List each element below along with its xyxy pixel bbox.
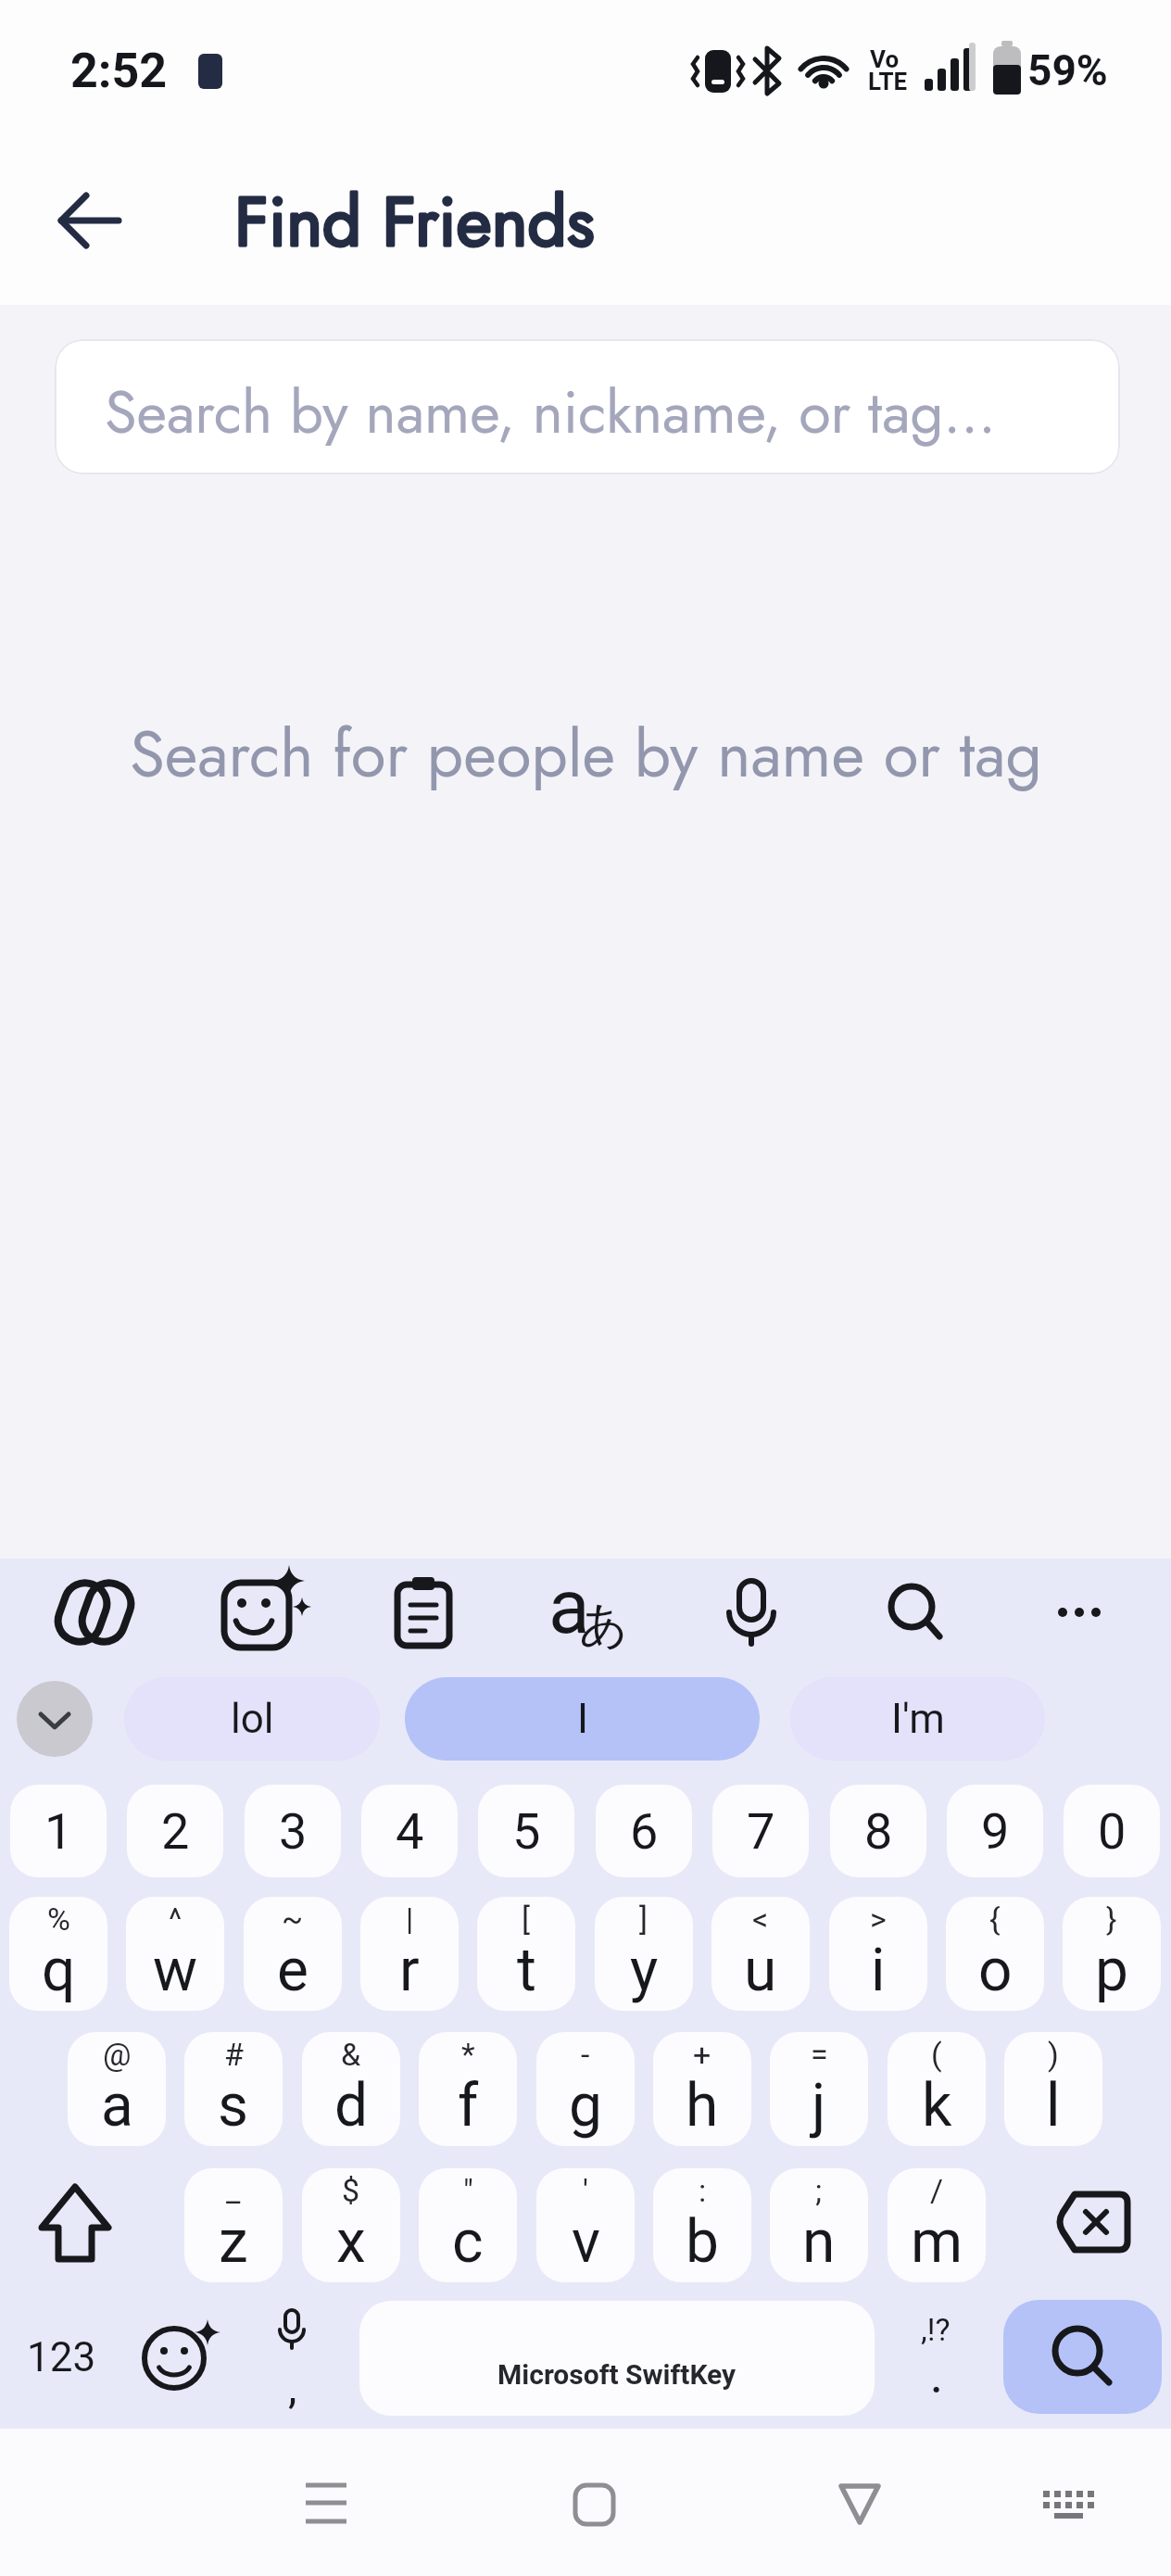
button[interactable] — [1039, 2168, 1152, 2279]
button[interactable]: # — [184, 2032, 283, 2146]
button[interactable]: * — [419, 2032, 517, 2146]
staticText: Search by name, nickname, or tag… — [105, 371, 997, 455]
button[interactable]: $ — [302, 2168, 400, 2282]
button[interactable] — [9, 2301, 113, 2416]
button[interactable]: ) — [1004, 2032, 1102, 2146]
button[interactable] — [1028, 1561, 1130, 1663]
button[interactable]: + — [653, 2032, 751, 2146]
staticText: = — [811, 2036, 828, 2073]
button[interactable]: lol — [124, 1677, 380, 1761]
button[interactable]: ~ — [244, 1897, 342, 2011]
staticText: | — [406, 1900, 414, 1938]
button[interactable]: 2 — [127, 1785, 223, 1877]
staticText: 9 — [981, 1802, 1010, 1861]
button[interactable] — [864, 1561, 966, 1663]
staticText: h — [686, 2071, 719, 2140]
button[interactable] — [546, 2453, 644, 2551]
button[interactable]: { — [946, 1897, 1044, 2011]
button[interactable]: : — [653, 2168, 751, 2282]
staticText: 1 — [44, 1802, 73, 1861]
button[interactable]: & — [302, 2032, 400, 2146]
button[interactable]: 4 — [361, 1785, 458, 1877]
staticText: あ — [579, 1595, 629, 1656]
staticText: t — [517, 1936, 536, 2005]
button[interactable]: _ — [184, 2168, 283, 2282]
button[interactable]: < — [711, 1897, 810, 2011]
button[interactable]: - — [536, 2032, 635, 2146]
button[interactable]: ; — [770, 2168, 868, 2282]
button[interactable]: / — [888, 2168, 986, 2282]
button[interactable]: % — [9, 1897, 107, 2011]
staticText: f — [458, 2071, 479, 2140]
button[interactable]: Microsoft SwiftKey — [359, 2301, 875, 2416]
staticText: 59% — [1027, 45, 1108, 95]
staticText: lol — [231, 1695, 274, 1743]
button[interactable]: I — [405, 1677, 760, 1761]
staticText: ] — [639, 1900, 648, 1938]
button[interactable]: ( — [888, 2032, 986, 2146]
staticText: ~ — [282, 1900, 304, 1938]
button[interactable]: 8 — [830, 1785, 926, 1877]
button[interactable]: " — [419, 2168, 517, 2282]
button[interactable]: ^ — [126, 1897, 224, 2011]
staticText: x — [336, 2207, 366, 2277]
button[interactable] — [536, 1561, 638, 1663]
button[interactable]: @ — [68, 2032, 166, 2146]
button[interactable] — [44, 174, 136, 267]
staticText: b — [686, 2207, 719, 2277]
button[interactable] — [806, 2453, 904, 2551]
button[interactable] — [278, 2453, 376, 2551]
staticText: ^ — [169, 1900, 183, 1938]
button[interactable]: ] — [595, 1897, 693, 2011]
button[interactable]: Search by name, nickname, or tag… — [55, 339, 1120, 474]
button[interactable]: I'm — [790, 1677, 1045, 1761]
button[interactable] — [884, 2301, 988, 2416]
button[interactable]: > — [829, 1897, 927, 2011]
button[interactable] — [208, 1561, 310, 1663]
button[interactable]: 3 — [245, 1785, 341, 1877]
button[interactable] — [1016, 2453, 1114, 2551]
staticText: " — [463, 2172, 473, 2209]
button[interactable] — [126, 2301, 230, 2416]
button[interactable] — [17, 1681, 93, 1757]
staticText: j — [812, 2071, 826, 2140]
staticText: m — [911, 2207, 963, 2277]
staticText: l — [1046, 2071, 1061, 2140]
staticText: [ — [522, 1900, 531, 1938]
button[interactable] — [44, 1561, 146, 1663]
staticText: , — [288, 2361, 297, 2413]
button[interactable]: ' — [536, 2168, 635, 2282]
button[interactable]: | — [360, 1897, 459, 2011]
button[interactable] — [700, 1561, 802, 1663]
staticText: @ — [103, 2036, 132, 2073]
button[interactable]: 5 — [478, 1785, 574, 1877]
staticText: _ — [226, 2172, 241, 2209]
button[interactable] — [1003, 2300, 1162, 2414]
staticText: : — [699, 2172, 707, 2209]
button[interactable]: = — [770, 2032, 868, 2146]
staticText: 4 — [396, 1802, 424, 1861]
button[interactable]: 9 — [947, 1785, 1043, 1877]
button[interactable]: 1 — [10, 1785, 107, 1877]
staticText: / — [930, 2172, 944, 2209]
staticText: 0 — [1098, 1802, 1127, 1861]
button[interactable]: } — [1063, 1897, 1161, 2011]
button[interactable]: 6 — [596, 1785, 692, 1877]
staticText: ,!? — [921, 2311, 951, 2348]
staticText: { — [989, 1900, 1001, 1938]
staticText: 123 — [27, 2333, 96, 2381]
staticText: r — [399, 1936, 420, 2005]
button[interactable] — [19, 2168, 132, 2279]
staticText: w — [153, 1936, 198, 2005]
button[interactable] — [240, 2301, 344, 2416]
staticText: v — [572, 2207, 600, 2277]
button[interactable]: 0 — [1064, 1785, 1160, 1877]
staticText: + — [693, 2036, 711, 2073]
button[interactable]: 7 — [712, 1785, 809, 1877]
staticText: 3 — [279, 1802, 308, 1861]
button[interactable] — [372, 1561, 474, 1663]
staticText: - — [581, 2036, 590, 2073]
staticText: * — [461, 2036, 475, 2073]
staticText: I'm — [891, 1695, 945, 1743]
button[interactable]: [ — [477, 1897, 575, 2011]
